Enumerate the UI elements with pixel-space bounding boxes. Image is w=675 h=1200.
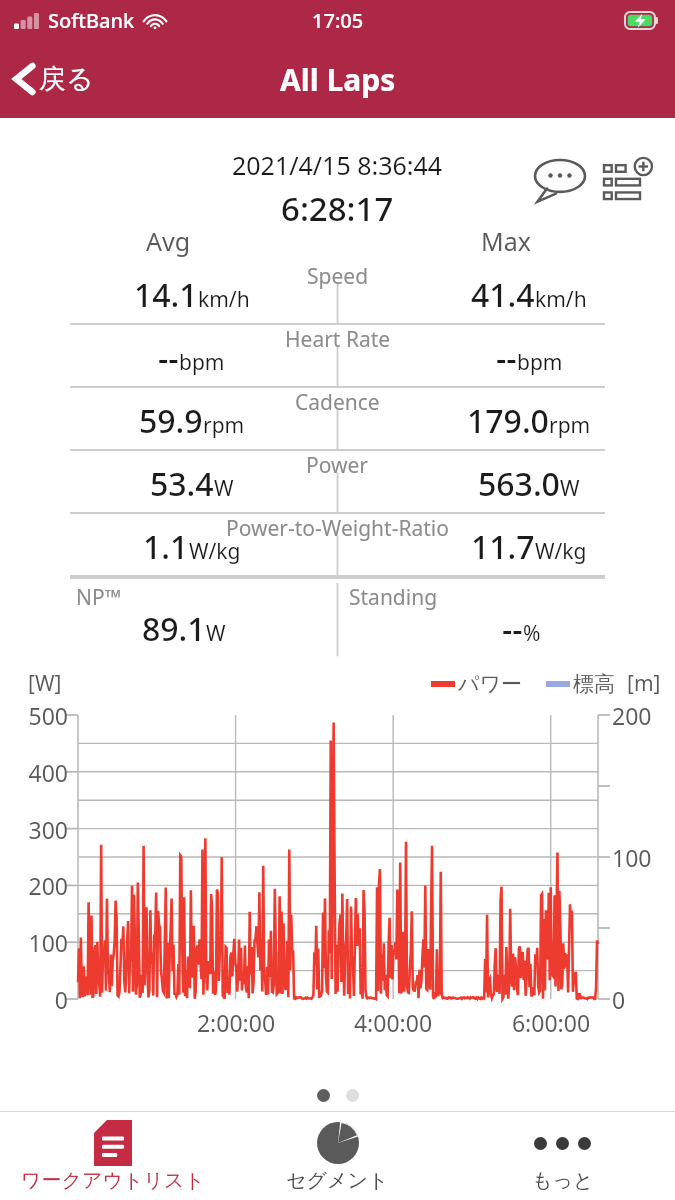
staticText: % xyxy=(523,619,541,648)
staticText: bpm xyxy=(179,348,225,377)
staticText: rpm xyxy=(203,411,245,440)
staticText: もっと xyxy=(532,1168,594,1193)
staticText: 6:00:00 xyxy=(496,1007,606,1038)
staticText: W xyxy=(214,474,234,503)
button[interactable]: Add lap xyxy=(599,152,657,210)
button[interactable]: 戻る xyxy=(0,51,112,107)
staticText: 41.4 xyxy=(471,273,535,317)
staticText: Power xyxy=(306,451,369,480)
staticText: 53.4 xyxy=(150,462,214,506)
staticText: 0 xyxy=(612,984,668,1015)
staticText: W xyxy=(206,619,226,648)
staticText: NP™ xyxy=(76,583,121,612)
staticText: 0 xyxy=(8,984,68,1015)
staticText: Max xyxy=(481,224,531,258)
staticText: 100 xyxy=(612,842,668,873)
staticText: -- xyxy=(496,336,517,380)
staticText: 1.1 xyxy=(143,525,189,569)
staticText: 563.0 xyxy=(478,462,560,506)
staticText: [m] xyxy=(627,669,661,698)
staticText: Standing xyxy=(349,583,438,612)
staticText: W xyxy=(560,474,580,503)
staticText: km/h xyxy=(535,285,587,314)
staticText: Cadence xyxy=(295,388,380,417)
staticText: 400 xyxy=(8,757,68,788)
staticText: 500 xyxy=(8,700,68,731)
staticText: 2:00:00 xyxy=(181,1007,291,1038)
staticText: W/kg xyxy=(535,537,587,566)
staticText: 標高 xyxy=(573,671,615,697)
staticText: 4:00:00 xyxy=(338,1007,448,1038)
staticText: bpm xyxy=(517,348,563,377)
staticText: 11.7 xyxy=(471,525,535,569)
staticText: 100 xyxy=(8,927,68,958)
staticText: パワー xyxy=(458,671,522,697)
staticText: Heart Rate xyxy=(285,325,391,354)
button[interactable]: ワークアウトリスト xyxy=(0,1112,225,1200)
staticText: km/h xyxy=(198,285,250,314)
staticText: 300 xyxy=(8,814,68,845)
staticText: Speed xyxy=(307,262,369,291)
button[interactable]: セグメント xyxy=(225,1112,450,1200)
button[interactable]: Comments xyxy=(531,152,589,210)
staticText: 戻る xyxy=(39,62,94,96)
staticText: Power-to-Weight-Ratio xyxy=(226,514,449,543)
staticText: 59.9 xyxy=(139,399,203,443)
staticText: 200 xyxy=(612,700,668,731)
staticText: rpm xyxy=(549,411,591,440)
staticText: 2021/4/15 8:36:44 xyxy=(232,148,443,182)
staticText: SoftBank xyxy=(48,7,135,34)
staticText: All Laps xyxy=(280,59,396,100)
staticText: セグメント xyxy=(286,1168,389,1193)
staticText: 6:28:17 xyxy=(281,186,394,224)
staticText: 200 xyxy=(8,870,68,901)
staticText: -- xyxy=(502,607,523,651)
staticText: -- xyxy=(158,336,179,380)
staticText: 89.1 xyxy=(142,607,206,651)
staticText: ワークアウトリスト xyxy=(21,1168,205,1193)
staticText: [W] xyxy=(28,669,62,698)
staticText: 14.1 xyxy=(134,273,198,317)
staticText: 17:05 xyxy=(312,7,364,34)
staticText: 179.0 xyxy=(467,399,549,443)
staticText: Avg xyxy=(146,224,191,258)
staticText: W/kg xyxy=(189,537,241,566)
button[interactable]: もっと xyxy=(450,1112,675,1200)
